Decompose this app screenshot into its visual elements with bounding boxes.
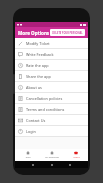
staticText: Trips (25, 156, 31, 159)
button[interactable]: Trips (15, 149, 40, 161)
button[interactable]: Share the app (15, 71, 88, 82)
button[interactable]: Login (15, 126, 88, 137)
button[interactable]: Write Feedback (15, 49, 88, 60)
staticText: Write Feedback (26, 52, 54, 57)
staticText: Share the app (26, 74, 51, 79)
staticText: DELETE YOUR PERSONAL DATA (52, 31, 83, 34)
staticText: Rate the app (26, 63, 49, 68)
button[interactable]: About us (15, 82, 88, 93)
staticText: Login (26, 129, 36, 134)
staticText: Cancellation policies (26, 96, 63, 101)
staticText: About us (26, 85, 42, 90)
button[interactable]: Offers (64, 149, 88, 161)
staticText: Modify Ticket (26, 41, 50, 46)
button[interactable]: Modify Ticket (15, 38, 88, 49)
staticText: Offers (73, 156, 80, 159)
button[interactable]: Terms and conditions (15, 104, 88, 115)
button[interactable]: My Bookings (40, 149, 64, 161)
button[interactable]: Rate the app (15, 60, 88, 71)
staticText: Terms and conditions (26, 107, 65, 112)
button[interactable]: DELETE YOUR PERSONAL DATA (50, 29, 85, 36)
button[interactable]: Cancellation policies (15, 93, 88, 104)
staticText: My Bookings (45, 156, 59, 159)
button[interactable]: Contact Us (15, 115, 88, 126)
staticText: Contact Us (26, 118, 46, 123)
staticText: More Options (18, 30, 50, 36)
